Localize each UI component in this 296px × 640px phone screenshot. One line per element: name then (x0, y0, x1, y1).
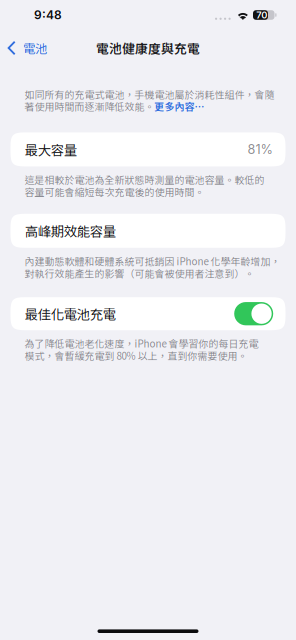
staticText: 81% (247, 142, 272, 157)
staticText: 最大容量 (25, 140, 77, 159)
staticText: 這是相較於電池為全新狀態時測量的電池容量。較低的 (24, 172, 264, 187)
staticText: 如同所有的充電式電池，手機電池屬於消耗性組件，會隨 (24, 87, 274, 101)
staticText: 高峰期效能容量 (25, 221, 116, 240)
staticText: 電池 (23, 39, 47, 57)
button[interactable]: 高峰期效能容量 (10, 214, 285, 248)
staticText: 最佳化電池充電 (25, 304, 116, 323)
staticText: 著使用時間而逐漸降低效能。 (24, 99, 154, 113)
staticText: 更多內容⋯ (154, 99, 204, 113)
staticText: 容量可能會縮短每次充電後的使用時間。 (24, 185, 204, 199)
button[interactable]: 最佳化電池充電 (10, 297, 285, 330)
button[interactable]: 最大容量 (10, 132, 285, 166)
staticText: 9:48 (34, 8, 62, 22)
staticText: 70 (256, 9, 267, 21)
staticText: 內建動態軟體和硬體系統可抵銷因 iPhone 化學年齡增加， (24, 254, 280, 268)
button[interactable]: 電池 (0, 34, 55, 62)
staticText: 電池健康度與充電 (96, 39, 200, 57)
staticText: 為了降低電池老化速度，iPhone 會學習你的每日充電 (24, 336, 258, 350)
staticText: 模式，會暫緩充電到 80% 以上，直到你需要使用。 (24, 348, 247, 363)
button[interactable]: 更多內容⋯ (154, 99, 204, 113)
staticText: 對執行效能產生的影響（可能會被使用者注意到）。 (24, 266, 254, 280)
